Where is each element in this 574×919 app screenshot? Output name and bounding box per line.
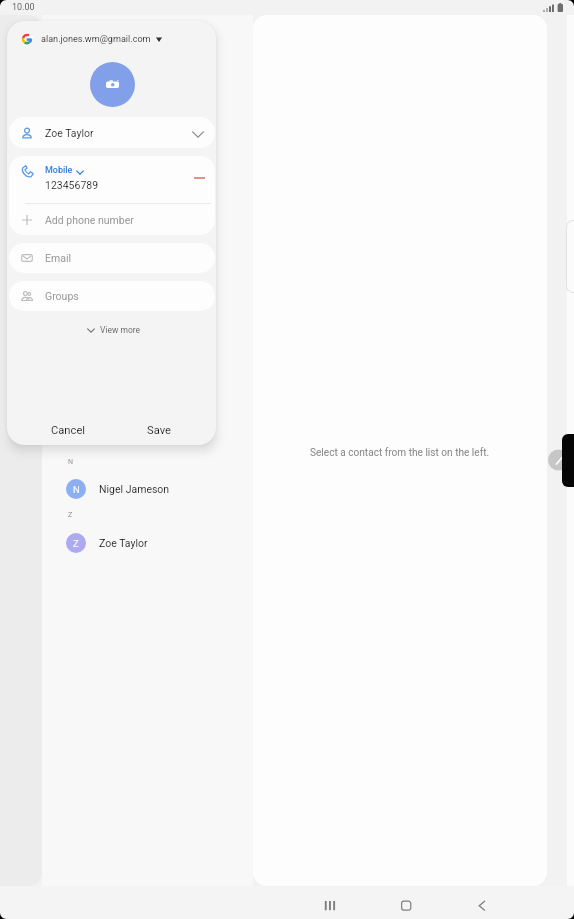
button[interactable]: Cancel	[33, 416, 104, 444]
button[interactable]: N	[42, 471, 253, 507]
button[interactable]: Email	[9, 243, 215, 273]
button[interactable]: Recents	[316, 886, 344, 919]
button[interactable]: Z	[42, 525, 253, 561]
staticText: Mobile	[45, 165, 73, 176]
staticText: Z	[68, 511, 73, 519]
staticText: Select a contact from the list on the le…	[310, 447, 490, 459]
staticText: View more	[100, 325, 141, 335]
staticText: Z	[73, 538, 79, 549]
staticText: Groups	[45, 290, 79, 302]
staticText: Zoe Taylor	[99, 537, 148, 549]
button[interactable]: Back	[468, 886, 496, 919]
button[interactable]: Open edge panel	[562, 434, 574, 487]
staticText: N	[68, 458, 73, 466]
staticText: 10.00	[12, 2, 35, 13]
button[interactable]: Save	[123, 416, 194, 444]
staticText: Add phone number	[45, 214, 134, 226]
staticText: Nigel Jameson	[99, 483, 170, 495]
button[interactable]: Mobile	[45, 164, 84, 176]
button[interactable]: Remove phone number	[188, 167, 210, 189]
staticText: N	[73, 484, 80, 495]
button[interactable]: Add phone number	[9, 204, 215, 235]
button[interactable]: Change profile picture	[90, 62, 135, 107]
staticText: Save	[147, 424, 171, 437]
staticText: alan.jones.wm@gmail.com	[41, 34, 151, 45]
button[interactable]: Home	[392, 886, 420, 919]
staticText: Email	[45, 252, 71, 264]
button[interactable]: alan.jones.wm@gmail.com	[15, 28, 200, 50]
button[interactable]: Groups	[9, 281, 215, 311]
button[interactable]: View more	[83, 321, 145, 339]
button[interactable]: Zoe Taylor	[9, 117, 215, 148]
staticText: Zoe Taylor	[45, 127, 94, 139]
staticText: 123456789	[45, 179, 99, 191]
staticText: Cancel	[51, 424, 86, 437]
